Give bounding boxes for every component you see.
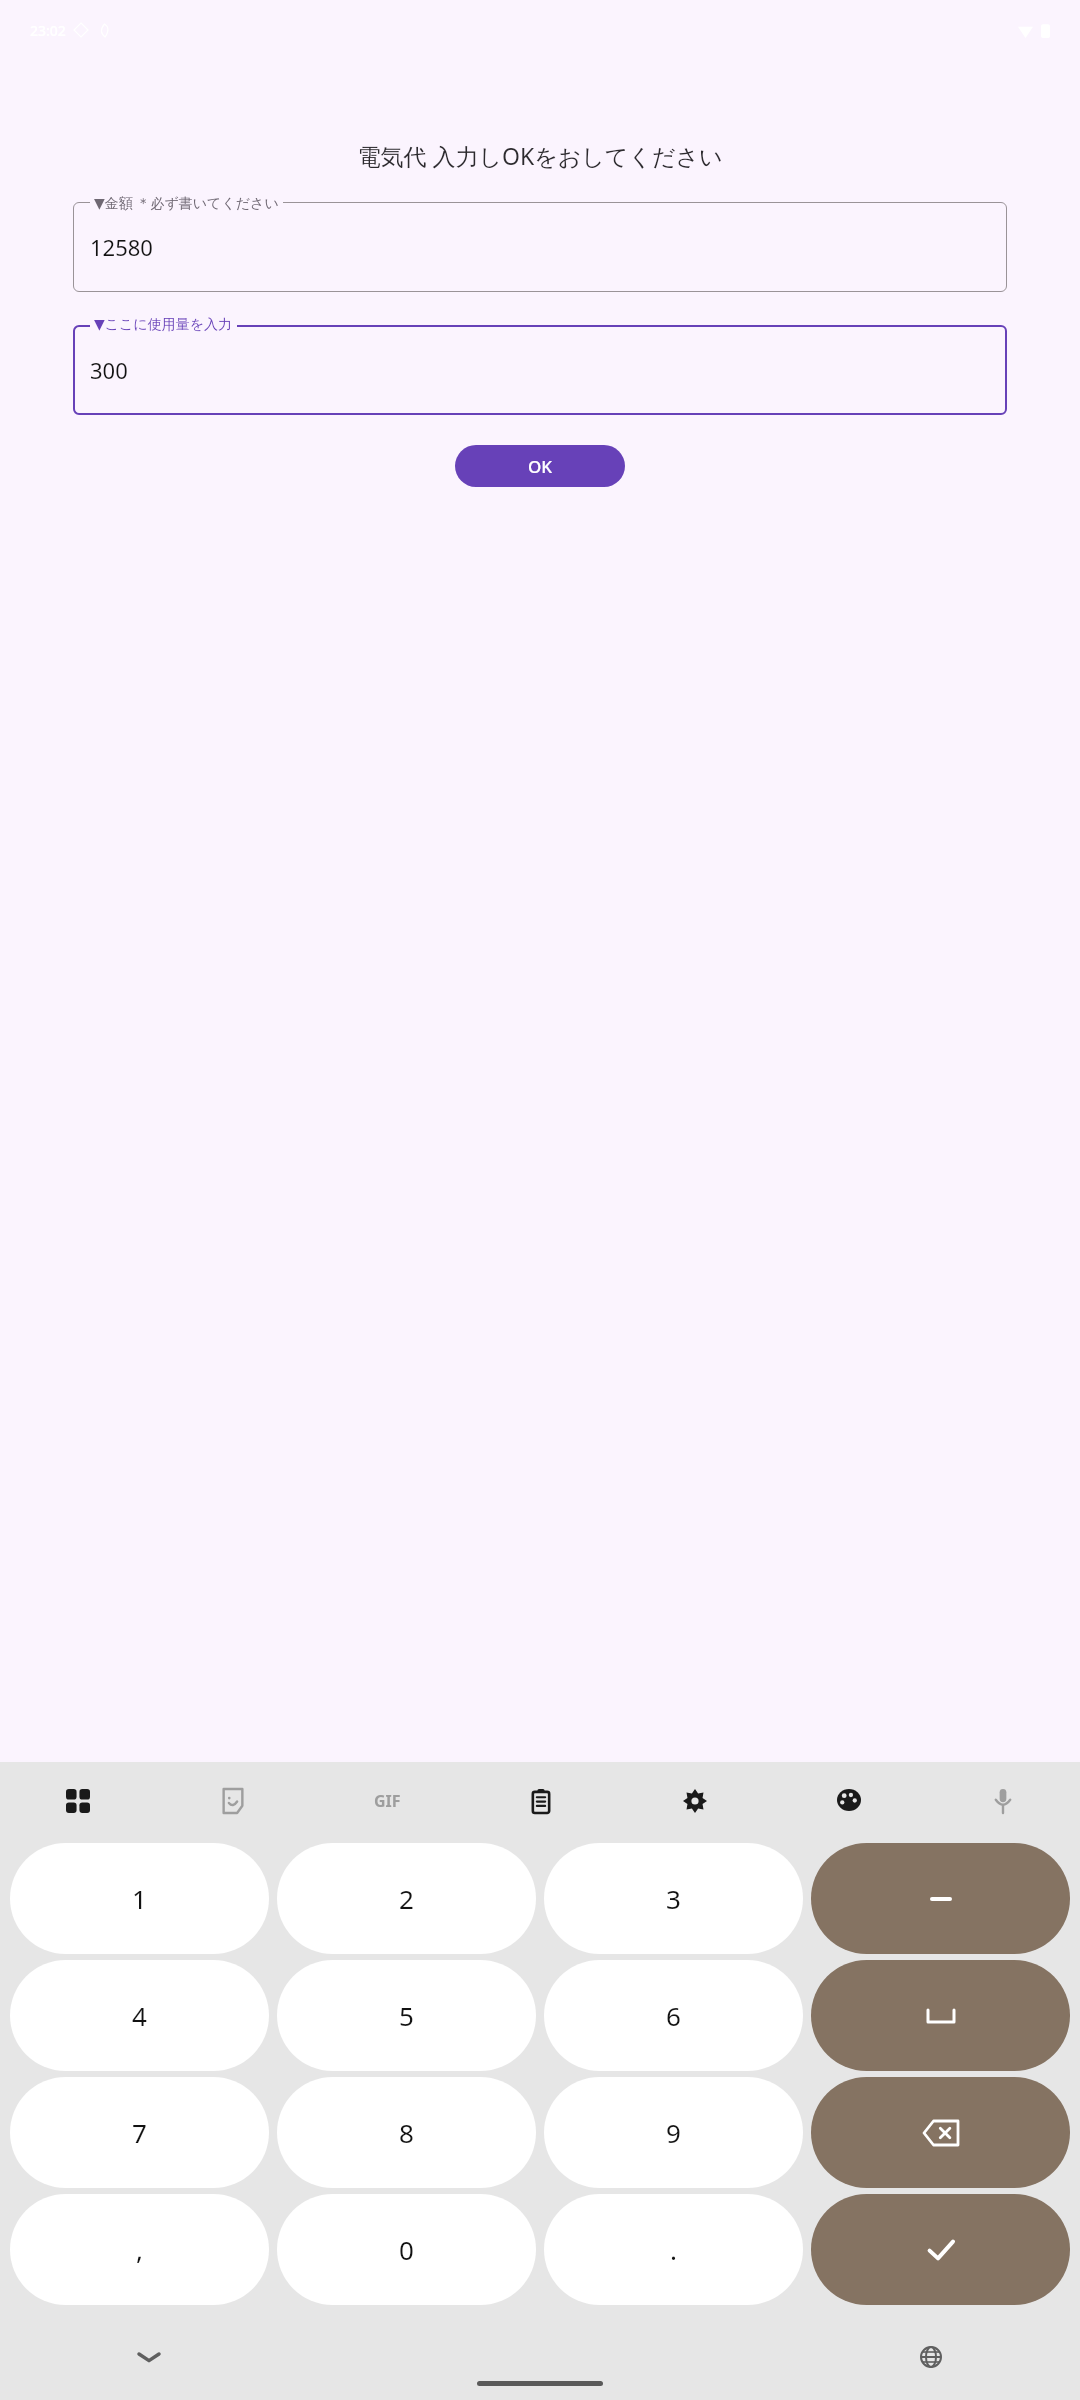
button[interactable]: 5 — [277, 1960, 536, 2071]
staticText: 電気代 入力しOKをおしてください — [0, 140, 1080, 171]
button[interactable]: Settings — [618, 1762, 772, 1840]
button[interactable]: Voice input — [926, 1762, 1080, 1840]
button[interactable]: GIF — [310, 1762, 464, 1840]
button[interactable]: ▼金額 ＊必ず書いてください — [94, 193, 279, 212]
staticText: 12580 — [90, 232, 153, 262]
button[interactable]: 3 — [544, 1843, 803, 1954]
button[interactable]: ▼ここに使用量を入力 — [94, 316, 233, 334]
button[interactable]: . — [544, 2194, 803, 2305]
button[interactable]: 4 — [10, 1960, 269, 2071]
button[interactable]: Dash — [811, 1843, 1070, 1954]
staticText: 7 — [132, 2115, 147, 2150]
button[interactable]: Change language — [907, 2333, 955, 2381]
button[interactable]: Stickers — [155, 1762, 310, 1840]
staticText: ▼ここに使用量を入力 — [94, 316, 233, 334]
staticText: 9 — [666, 2115, 681, 2150]
staticText: OK — [528, 455, 553, 478]
button[interactable]: 9 — [544, 2077, 803, 2188]
button[interactable]: Backspace — [811, 2077, 1070, 2188]
button[interactable]: 7 — [10, 2077, 269, 2188]
button[interactable]: Theme — [772, 1762, 926, 1840]
button[interactable]: OK — [455, 445, 625, 487]
button[interactable]: Space — [811, 1960, 1070, 2071]
staticText: GIF — [374, 1790, 401, 1812]
button[interactable]: 0 — [277, 2194, 536, 2305]
staticText: 5 — [399, 1998, 414, 2033]
staticText: ▼金額 ＊必ず書いてください — [94, 193, 279, 212]
button[interactable]: 1 — [10, 1843, 269, 1954]
staticText: 23:02 — [30, 21, 66, 40]
staticText: , — [136, 2232, 143, 2267]
button[interactable]: Apps — [0, 1762, 155, 1840]
staticText: 1 — [132, 1881, 147, 1916]
button[interactable]: 8 — [277, 2077, 536, 2188]
button[interactable]: 6 — [544, 1960, 803, 2071]
button[interactable]: Enter — [811, 2194, 1070, 2305]
staticText: 300 — [90, 355, 128, 385]
staticText: 8 — [399, 2115, 414, 2150]
button[interactable]: , — [10, 2194, 269, 2305]
button[interactable]: 300 — [73, 325, 1007, 415]
button[interactable]: 2 — [277, 1843, 536, 1954]
staticText: 2 — [399, 1881, 414, 1916]
button[interactable]: Hide keyboard — [125, 2333, 173, 2381]
button[interactable]: 12580 — [73, 202, 1007, 292]
staticText: 6 — [666, 1998, 681, 2033]
staticText: 3 — [666, 1881, 681, 1916]
button[interactable]: Clipboard — [464, 1762, 618, 1840]
staticText: . — [670, 2232, 677, 2267]
staticText: 4 — [132, 1998, 147, 2033]
staticText: 0 — [399, 2232, 414, 2267]
